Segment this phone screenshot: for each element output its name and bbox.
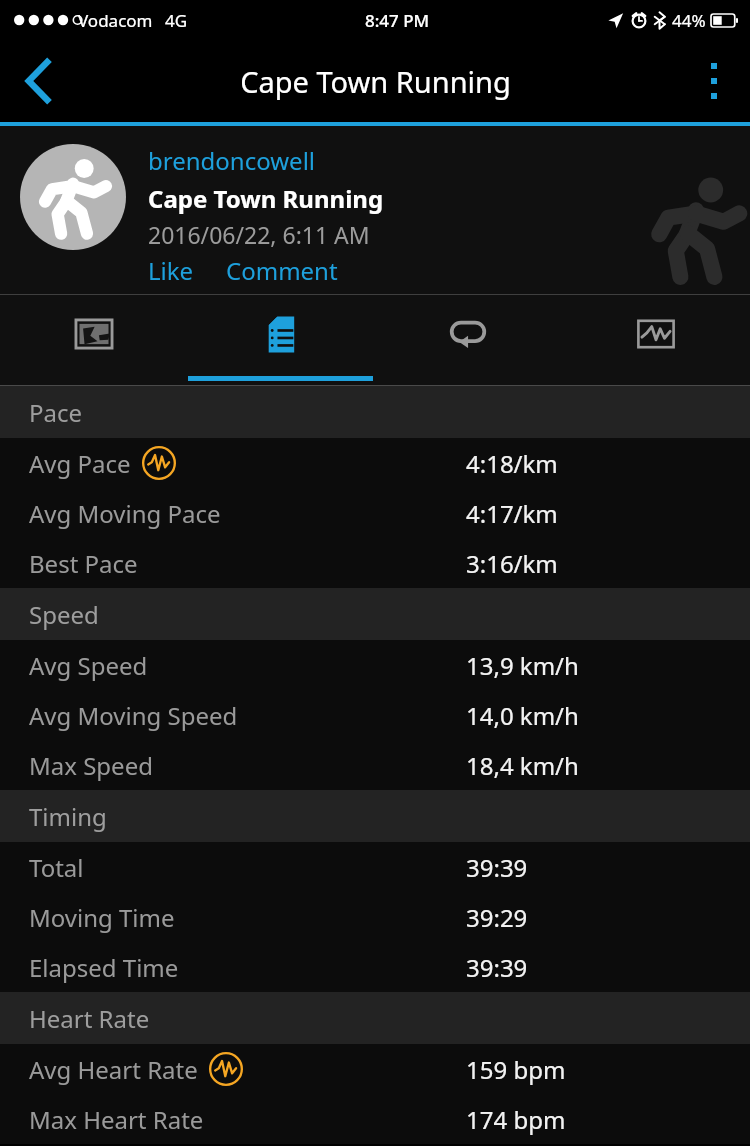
button[interactable]: Like bbox=[148, 254, 194, 287]
staticText: 18,4 km/h bbox=[466, 749, 579, 782]
staticText: 4:17/km bbox=[466, 497, 558, 530]
staticText: 174 bpm bbox=[466, 1103, 566, 1136]
button[interactable]: Avg Moving Pace bbox=[0, 488, 750, 538]
staticText: 159 bpm bbox=[466, 1053, 566, 1086]
button[interactable]: Avg Pace bbox=[0, 438, 750, 488]
button[interactable]: Moving Time bbox=[0, 892, 750, 942]
staticText: Avg Pace bbox=[29, 447, 131, 480]
button[interactable]: Back bbox=[0, 40, 76, 122]
staticText: Cape Town Running bbox=[240, 62, 511, 101]
staticText: 2016/06/22, 6:11 AM bbox=[148, 219, 370, 250]
staticText: Speed bbox=[29, 598, 99, 631]
button[interactable]: Elapsed Time bbox=[0, 942, 750, 992]
staticText: 4G bbox=[165, 9, 188, 32]
button[interactable]: Details bbox=[187, 295, 374, 385]
button[interactable]: Comment bbox=[226, 254, 338, 287]
staticText: Like bbox=[148, 254, 194, 287]
staticText: 13,9 km/h bbox=[466, 649, 579, 682]
staticText: Avg Heart Rate bbox=[29, 1053, 198, 1086]
staticText: Avg Moving Pace bbox=[29, 497, 221, 530]
staticText: Total bbox=[29, 851, 84, 884]
button[interactable]: Laps bbox=[374, 295, 562, 385]
staticText: Avg Moving Speed bbox=[29, 699, 238, 732]
staticText: 39:39 bbox=[466, 851, 528, 884]
staticText: Heart Rate bbox=[29, 1002, 150, 1035]
button[interactable]: Avg Moving Speed bbox=[0, 690, 750, 740]
staticText: Moving Time bbox=[29, 901, 175, 934]
staticText: Max Speed bbox=[29, 749, 153, 782]
staticText: 3:16/km bbox=[466, 547, 558, 580]
staticText: 39:39 bbox=[466, 951, 528, 984]
button[interactable]: Max Heart Rate bbox=[0, 1094, 750, 1144]
button[interactable]: Avg Heart Rate bbox=[0, 1044, 750, 1094]
staticText: Avg Speed bbox=[29, 649, 148, 682]
staticText: 8:47 PM bbox=[365, 9, 430, 32]
staticText: 44% bbox=[672, 9, 706, 32]
button[interactable]: Best Pace bbox=[0, 538, 750, 588]
staticText: Pace bbox=[29, 396, 83, 429]
staticText: 4:18/km bbox=[466, 447, 558, 480]
button[interactable]: brendoncowell bbox=[148, 144, 316, 177]
button[interactable]: Avg Speed bbox=[0, 640, 750, 690]
staticText: Comment bbox=[226, 254, 338, 287]
staticText: Timing bbox=[29, 800, 107, 833]
staticText: Best Pace bbox=[29, 547, 138, 580]
staticText: 14,0 km/h bbox=[466, 699, 579, 732]
staticText: Cape Town Running bbox=[148, 182, 384, 215]
button[interactable]: Total bbox=[0, 842, 750, 892]
button[interactable]: Max Speed bbox=[0, 740, 750, 790]
staticText: Elapsed Time bbox=[29, 951, 179, 984]
button[interactable]: Map bbox=[0, 295, 187, 385]
button[interactable]: Charts bbox=[562, 295, 750, 385]
staticText: 39:29 bbox=[466, 901, 528, 934]
staticText: Max Heart Rate bbox=[29, 1103, 204, 1136]
staticText: Vodacom bbox=[78, 9, 153, 32]
button[interactable]: More options bbox=[680, 40, 750, 122]
